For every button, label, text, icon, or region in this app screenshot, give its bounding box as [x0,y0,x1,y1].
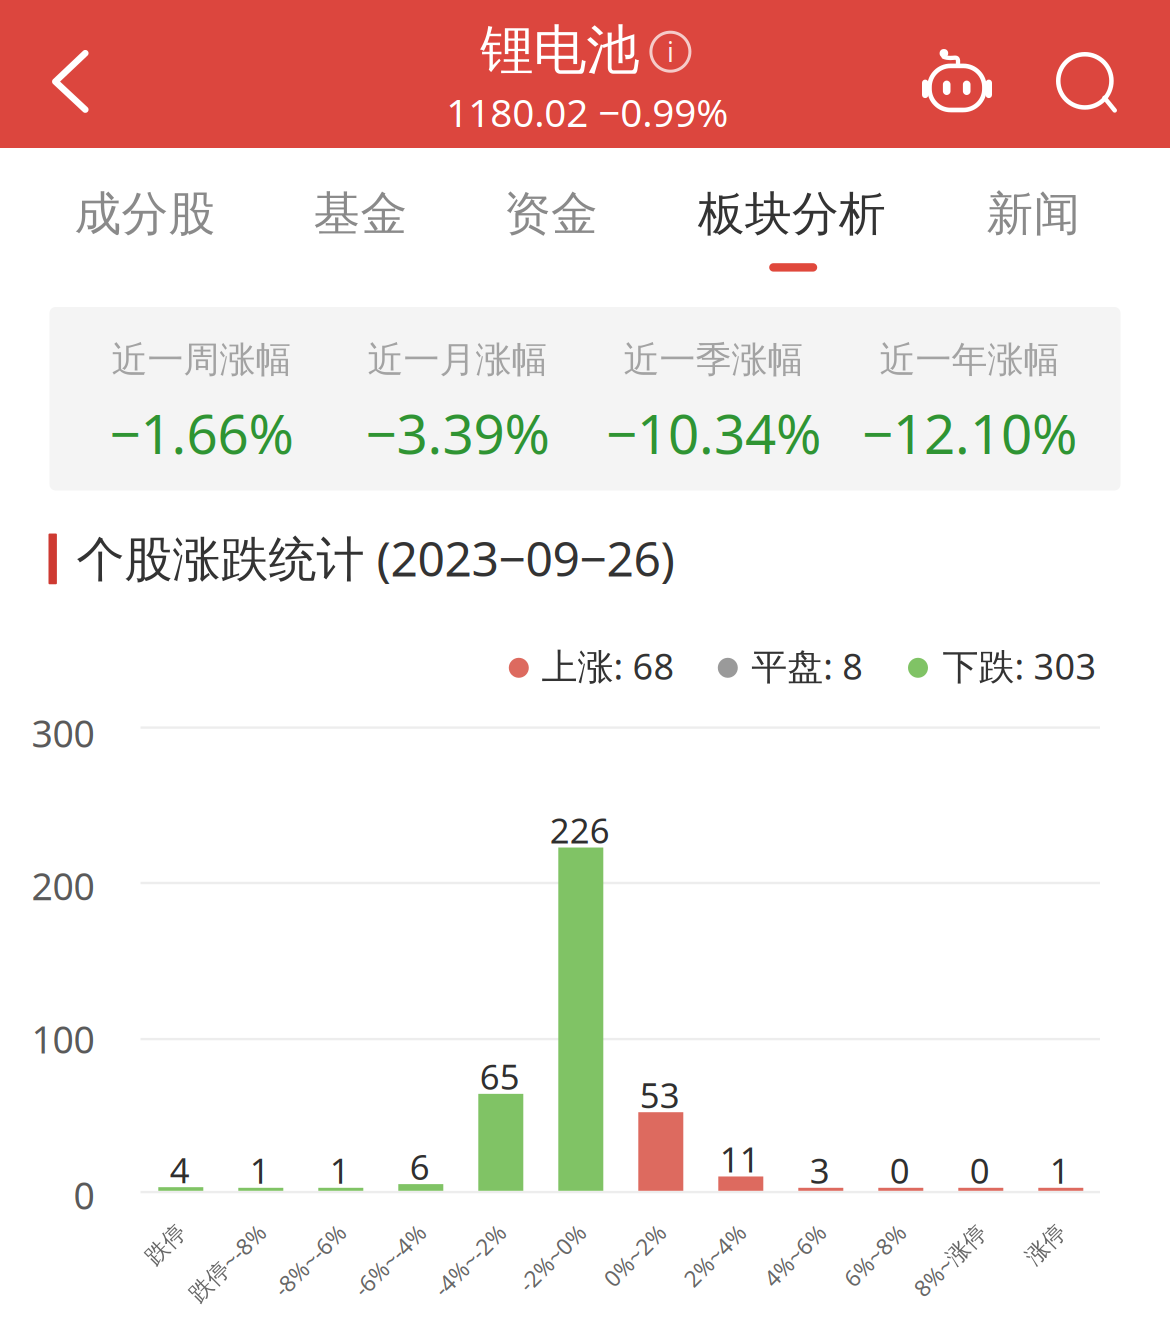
staticText: 200 [31,861,94,911]
staticText: 跌停 [136,1214,182,1242]
staticText: 板块分析 [698,185,886,243]
staticText: 1 [330,1147,350,1193]
staticText: 近一周涨幅 [111,338,291,382]
staticText: 6 [410,1144,430,1190]
button[interactable]: Back [0,0,120,130]
staticText: 个股涨跌统计 (2023−09−26) [76,526,674,590]
button[interactable]: 板块分析 [0,0,230,110]
staticText: 近一月涨幅 [367,338,547,382]
button[interactable]: AI assistant [0,0,120,120]
button[interactable]: 资金 [0,0,230,110]
staticText: 成分股 [75,185,216,243]
staticText: 涨停 [1016,1214,1062,1242]
staticText: 基金 [313,185,407,243]
button[interactable]: 新闻 [0,0,230,110]
staticText: 跌停~-8% [164,1213,262,1243]
staticText: 下跌: 303 [942,642,1096,690]
staticText: 65 [480,1053,520,1099]
staticText: 平盘: 8 [751,642,863,690]
staticText: 11 [720,1136,760,1182]
staticText: 2%~4% [665,1213,742,1243]
staticText: −1.66% [109,397,293,469]
staticText: 0 [970,1147,990,1193]
staticText: -2%~0% [498,1213,582,1243]
staticText: 锂电池 [480,17,639,83]
staticText: 0%~2% [585,1213,662,1243]
staticText: 1180.02 −0.99% [446,86,728,138]
staticText: 0 [73,1170,94,1220]
button[interactable]: 基金 [0,0,230,110]
staticText: 4 [170,1147,190,1193]
staticText: 6%~8% [825,1213,902,1243]
button[interactable]: 成分股 [0,0,230,110]
staticText: 近一季涨幅 [623,338,803,382]
button[interactable]: Search [0,0,120,120]
staticText: −12.10% [862,397,1077,469]
staticText: 4%~6% [745,1213,822,1243]
staticText: 上涨: 68 [541,642,674,690]
staticText: 资金 [504,185,598,243]
staticText: −10.34% [606,397,821,469]
staticText: -8%~-6% [251,1213,342,1243]
staticText: 近一年涨幅 [879,338,1059,382]
staticText: 3 [810,1147,830,1193]
staticText: 8%~涨停 [891,1213,982,1243]
staticText: 100 [31,1014,94,1064]
staticText: 1 [1050,1147,1070,1193]
staticText: 新闻 [986,185,1080,243]
staticText: 226 [550,807,610,853]
staticText: 0 [890,1147,910,1193]
staticText: 53 [640,1072,680,1118]
staticText: 1 [250,1147,270,1193]
staticText: 300 [31,708,94,758]
staticText: -4%~-2% [411,1213,502,1243]
staticText: i [667,34,674,69]
staticText: -6%~-4% [331,1213,422,1243]
staticText: −3.39% [365,397,549,469]
